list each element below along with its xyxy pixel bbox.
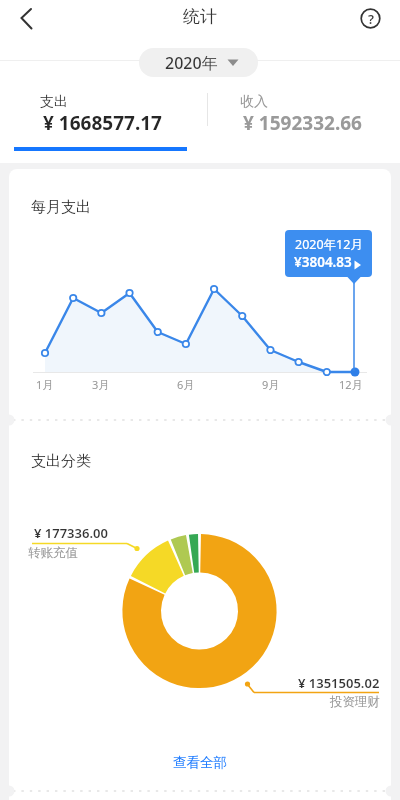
button[interactable] — [0, 0, 48, 38]
button[interactable]: 2020年 — [139, 48, 258, 77]
button[interactable] — [0, 88, 200, 148]
staticText: 统计 — [183, 6, 217, 27]
staticText: ¥ 1351505.02 — [298, 674, 380, 692]
staticText: 支出分类 — [31, 452, 91, 471]
staticText: 转账充值 — [28, 545, 78, 561]
staticText: 支出 — [40, 93, 68, 111]
staticText: ¥ 177336.00 — [34, 524, 108, 542]
staticText: 2020年12月 — [295, 236, 363, 253]
staticText: 9月 — [262, 377, 280, 392]
staticText: ¥3804.83 — [294, 253, 352, 271]
staticText: 3月 — [92, 377, 110, 392]
staticText: 每月支出 — [31, 198, 91, 217]
button[interactable] — [350, 0, 394, 38]
staticText: ¥ 1668577.17 — [43, 110, 162, 136]
button[interactable]: 查看全部 — [150, 748, 250, 776]
staticText: 收入 — [240, 93, 268, 111]
staticText: 12月 — [339, 377, 363, 392]
staticText: ¥ 1592332.66 — [243, 110, 362, 136]
staticText: 查看全部 — [173, 754, 227, 771]
button[interactable]: 2020年12月 — [285, 230, 372, 277]
staticText: 投资理财 — [330, 694, 380, 710]
staticText: ? — [368, 10, 374, 28]
staticText: 2020年 — [165, 52, 218, 74]
staticText: 6月 — [177, 377, 195, 392]
button[interactable] — [200, 88, 400, 148]
staticText: 1月 — [36, 377, 54, 392]
